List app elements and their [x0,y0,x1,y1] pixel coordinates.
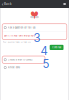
staticText: ♥ [30,9,39,21]
button[interactable]: Ask a question (or tell us) [2,24,67,31]
staticText: Almost done [8,66,20,69]
staticText: Your question helps us help you [3,41,31,43]
staticText: 5 [42,57,49,71]
staticText: ‹ [2,1,4,7]
staticText: Say it in your own words here [4,34,35,37]
staticText: 3 [33,31,40,45]
button[interactable]: More [63,0,69,8]
button[interactable]: Say it in your own words here [2,32,67,40]
button[interactable]: Choose a way to connect [2,56,45,63]
staticText: Continue [52,46,61,49]
staticText: Choose a way to connect [8,58,33,61]
button[interactable]: Almost done [0,65,69,70]
staticText: Ask a question (or tell us) [8,26,36,29]
button[interactable]: ‹ [0,0,12,8]
staticText: Back [4,2,12,6]
button[interactable]: Continue [50,45,63,50]
staticText: 4 [40,44,47,58]
